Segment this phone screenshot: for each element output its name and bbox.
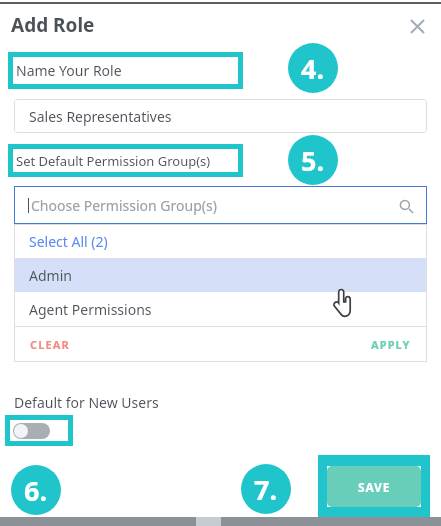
- staticText: 5.: [301, 142, 325, 179]
- staticText: 4.: [301, 50, 325, 87]
- button[interactable]: Admin: [14, 258, 427, 292]
- button[interactable]: APPLY: [368, 334, 414, 355]
- staticText: Add Role: [11, 12, 95, 38]
- staticText: APPLY: [371, 337, 411, 352]
- button[interactable]: Set Default Permission Group(s): [13, 149, 238, 172]
- staticText: CLEAR: [30, 337, 70, 352]
- staticText: Default for New Users: [14, 393, 159, 412]
- button[interactable]: CLEAR: [27, 334, 73, 355]
- button[interactable]: Agent Permissions: [14, 292, 427, 326]
- staticText: Name Your Role: [16, 61, 122, 80]
- button[interactable]: Choose Permission Group(s): [14, 186, 427, 224]
- staticText: 7.: [254, 471, 278, 508]
- button[interactable]: Sales Representatives: [14, 99, 427, 133]
- button[interactable]: Close: [404, 13, 430, 39]
- staticText: Agent Permissions: [29, 300, 152, 319]
- button[interactable]: SAVE: [327, 466, 421, 507]
- staticText: Select All (2): [29, 232, 108, 251]
- staticText: SAVE: [358, 479, 391, 495]
- button[interactable]: Default for new users toggle: [10, 420, 68, 441]
- staticText: Admin: [29, 266, 72, 285]
- staticText: 6.: [24, 472, 48, 509]
- button[interactable]: Name Your Role: [13, 57, 238, 84]
- staticText: Choose Permission Group(s): [31, 196, 217, 215]
- staticText: Set Default Permission Group(s): [16, 152, 211, 170]
- button[interactable]: Select All (2): [14, 224, 427, 258]
- staticText: Sales Representatives: [29, 107, 172, 126]
